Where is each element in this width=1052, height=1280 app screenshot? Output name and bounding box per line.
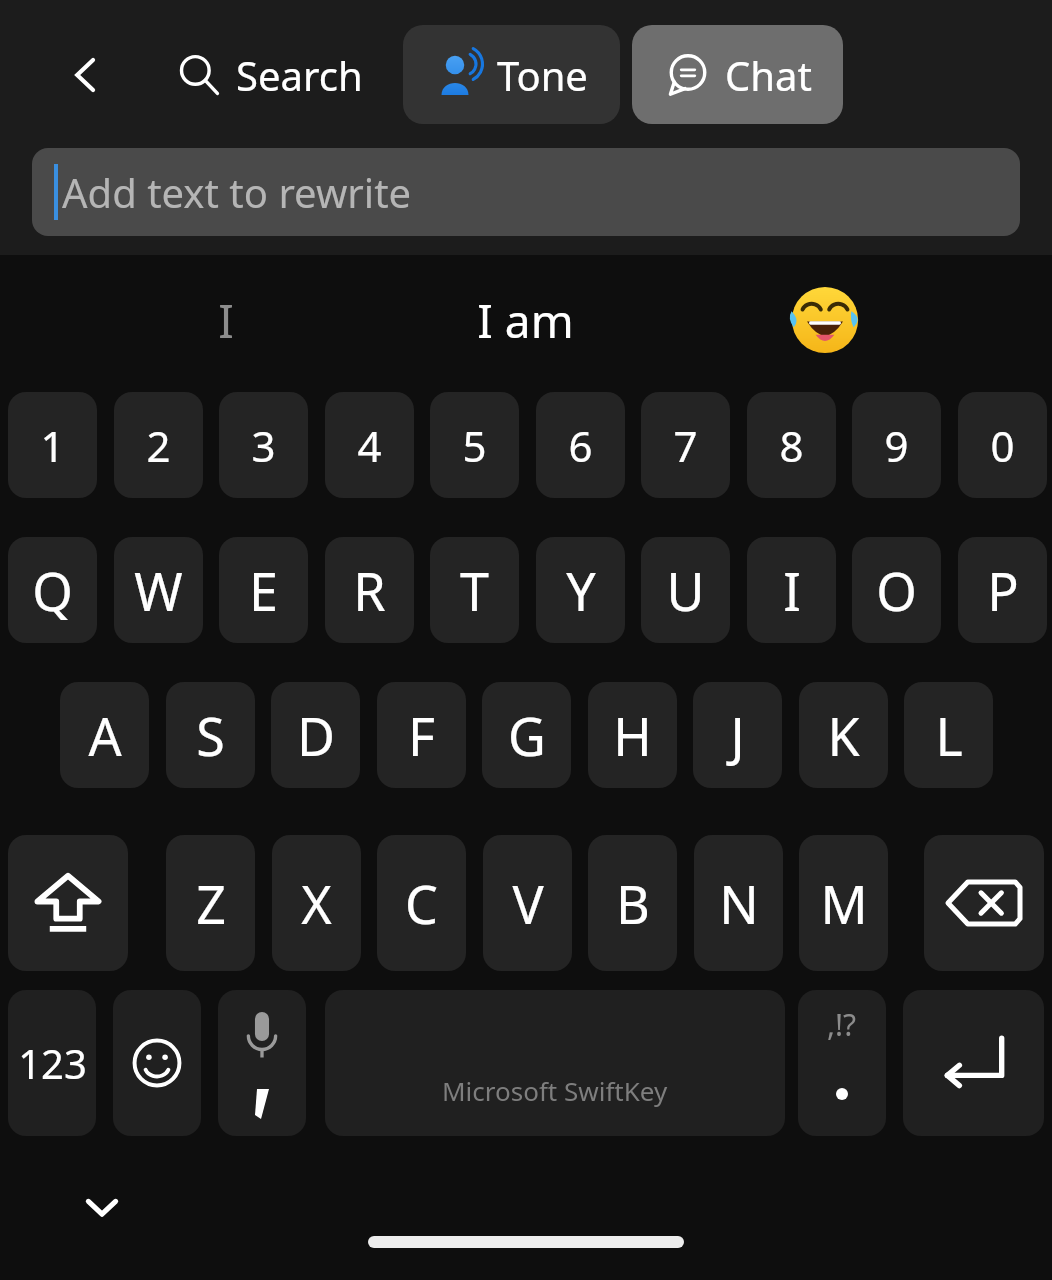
button[interactable]: 7 (641, 392, 730, 498)
button[interactable]: Laughing emoji suggestion (715, 265, 935, 375)
button[interactable]: O (852, 537, 941, 643)
button[interactable]: J (693, 682, 782, 788)
button[interactable]: A (60, 682, 149, 788)
staticText: Z (196, 868, 226, 939)
button[interactable]: Voice input, comma (218, 990, 306, 1136)
staticText: F (408, 700, 435, 771)
staticText: 4 (357, 417, 382, 474)
button[interactable]: Space (325, 990, 785, 1136)
staticText: E (249, 555, 278, 626)
button[interactable]: Hide keyboard (66, 1172, 138, 1242)
staticText: Y (566, 555, 596, 626)
button[interactable]: Y (536, 537, 625, 643)
staticText: V (512, 868, 544, 939)
staticText: 123 (18, 1036, 87, 1090)
staticText: I am (477, 289, 574, 352)
button[interactable]: 123 (8, 990, 96, 1136)
button[interactable]: Enter (903, 990, 1044, 1136)
button[interactable]: K (799, 682, 888, 788)
staticText: C (405, 868, 438, 939)
staticText: 8 (779, 417, 804, 474)
staticText: T (460, 555, 489, 626)
button[interactable]: R (325, 537, 414, 643)
button[interactable]: N (694, 835, 783, 971)
staticText: Add text to rewrite (62, 165, 412, 219)
staticText: A (88, 700, 122, 771)
staticText: 2 (146, 417, 171, 474)
button[interactable]: L (904, 682, 993, 788)
staticText: L (935, 700, 963, 771)
button[interactable]: B (588, 835, 677, 971)
button[interactable]: S (166, 682, 255, 788)
staticText: I (218, 289, 234, 352)
staticText: B (616, 868, 650, 939)
button[interactable]: 0 (958, 392, 1047, 498)
staticText: J (730, 700, 745, 771)
button[interactable]: H (588, 682, 677, 788)
staticText: W (134, 555, 183, 626)
staticText: O (876, 555, 917, 626)
button[interactable]: I (116, 265, 336, 375)
staticText: X (301, 868, 332, 939)
button[interactable]: 1 (8, 392, 97, 498)
staticText: S (196, 700, 225, 771)
staticText: 9 (884, 417, 909, 474)
staticText: Microsoft SwiftKey (442, 1073, 668, 1108)
button[interactable]: T (430, 537, 519, 643)
button[interactable]: D (271, 682, 360, 788)
staticText: K (827, 700, 860, 771)
button[interactable]: I (747, 537, 836, 643)
staticText: H (613, 700, 652, 771)
staticText: Search (236, 48, 363, 102)
button[interactable]: Emoji (113, 990, 201, 1136)
button[interactable]: X (272, 835, 361, 971)
staticText: 0 (990, 417, 1015, 474)
staticText: 7 (673, 417, 698, 474)
button[interactable]: 6 (536, 392, 625, 498)
button[interactable]: ,!? (798, 990, 886, 1136)
button[interactable]: 2 (114, 392, 203, 498)
staticText: D (297, 700, 335, 771)
staticText: N (719, 868, 759, 939)
staticText: 1 (40, 417, 65, 474)
staticText: Tone (497, 48, 588, 102)
button[interactable]: Add text to rewrite (32, 148, 1020, 236)
button[interactable]: P (958, 537, 1047, 643)
button[interactable]: Tone (403, 25, 620, 124)
button[interactable]: 3 (219, 392, 308, 498)
button[interactable]: V (483, 835, 572, 971)
staticText: I (783, 555, 801, 626)
button[interactable]: Z (166, 835, 255, 971)
staticText: Chat (725, 48, 812, 102)
button[interactable]: 8 (747, 392, 836, 498)
staticText: Q (32, 555, 73, 626)
button[interactable]: M (799, 835, 888, 971)
staticText: P (987, 555, 1019, 626)
staticText: U (666, 555, 705, 626)
staticText: M (820, 868, 868, 939)
button[interactable]: 5 (430, 392, 519, 498)
button[interactable]: C (377, 835, 466, 971)
button[interactable]: G (482, 682, 571, 788)
staticText: G (508, 700, 546, 771)
button[interactable]: W (114, 537, 203, 643)
button[interactable]: Chat (632, 25, 843, 124)
button[interactable]: U (641, 537, 730, 643)
button[interactable]: Backspace (924, 835, 1044, 971)
button[interactable]: 9 (852, 392, 941, 498)
button[interactable]: E (219, 537, 308, 643)
button[interactable]: F (377, 682, 466, 788)
button[interactable]: Search (168, 32, 371, 118)
staticText: ,!? (827, 1004, 857, 1045)
button[interactable]: Q (8, 537, 97, 643)
staticText: 6 (568, 417, 593, 474)
staticText: 5 (462, 417, 487, 474)
button[interactable]: 4 (325, 392, 414, 498)
staticText: R (353, 555, 386, 626)
button[interactable]: Back (50, 40, 122, 110)
staticText: 3 (251, 417, 276, 474)
button[interactable]: Shift (8, 835, 128, 971)
button[interactable]: I am (415, 265, 635, 375)
